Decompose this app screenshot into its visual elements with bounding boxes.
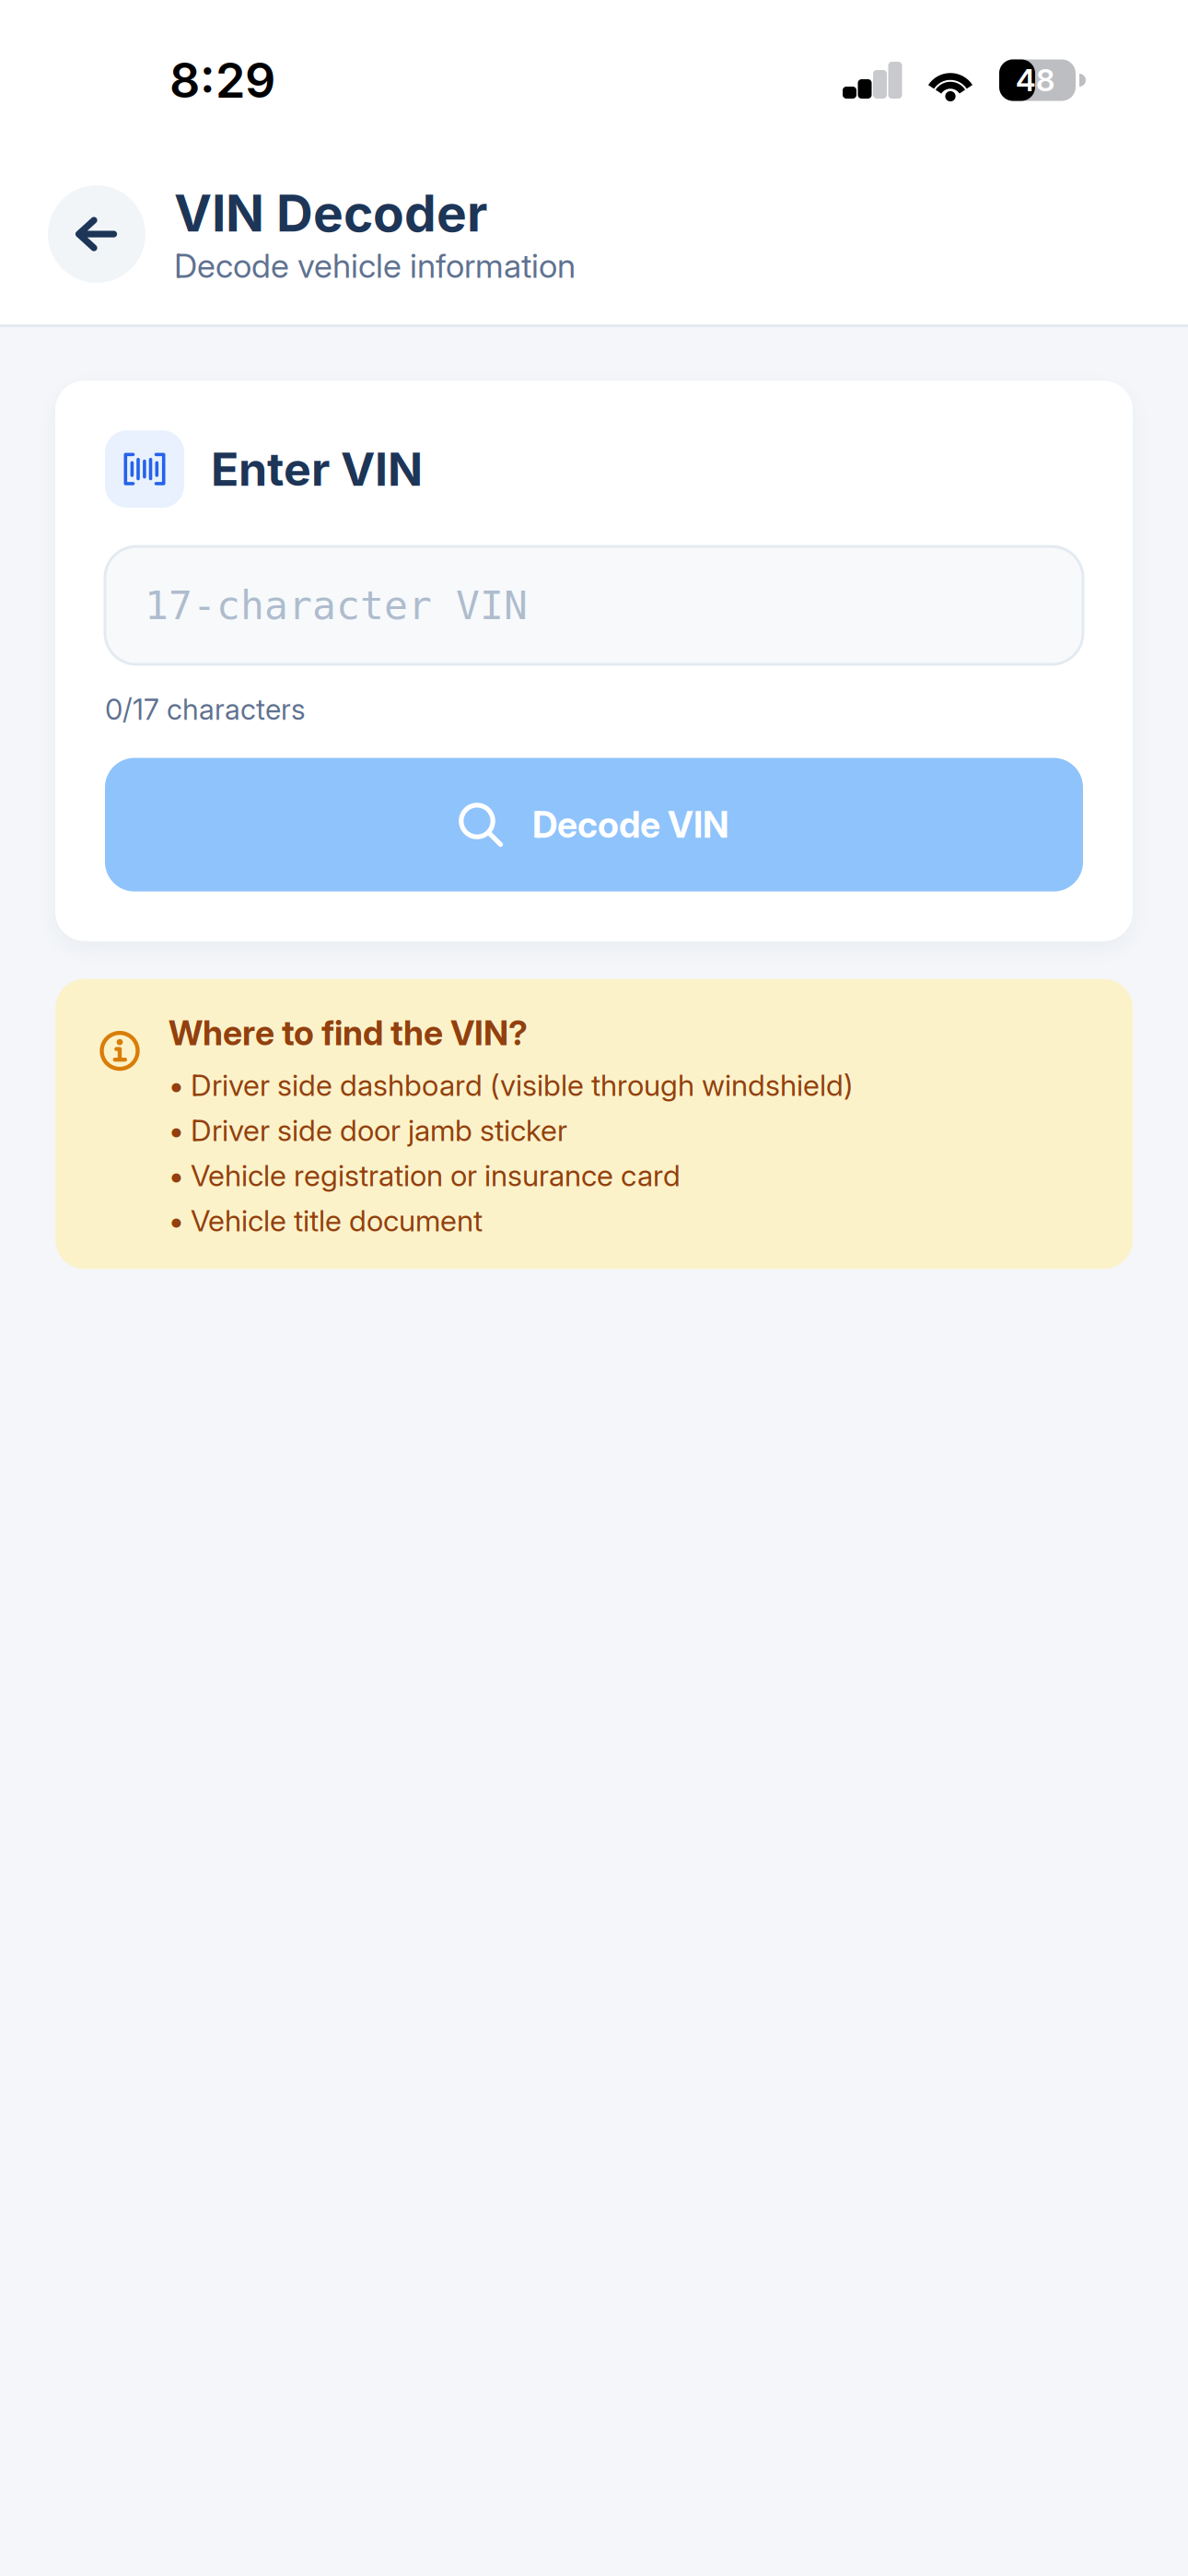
staticText: Driver side dashboard (visible through w… bbox=[191, 1067, 854, 1103]
staticText: 48 bbox=[1016, 62, 1054, 98]
staticText: • bbox=[169, 1067, 184, 1103]
staticText: Where to find the VIN? bbox=[169, 1012, 528, 1053]
button[interactable]: Back bbox=[48, 185, 146, 283]
staticText: Driver side door jamb sticker bbox=[191, 1112, 567, 1148]
button[interactable]: 17-character VIN bbox=[105, 546, 1083, 664]
button[interactable]: Decode VIN bbox=[105, 758, 1083, 891]
staticText: • bbox=[169, 1158, 184, 1193]
staticText: VIN Decoder bbox=[174, 182, 487, 244]
staticText: Vehicle registration or insurance card bbox=[191, 1158, 681, 1193]
staticText: 17-character VIN bbox=[145, 582, 528, 629]
staticText: • bbox=[169, 1112, 184, 1148]
staticText: 8:29 bbox=[169, 51, 275, 109]
staticText: 0/17 characters bbox=[105, 692, 306, 727]
staticText: Decode vehicle information bbox=[174, 246, 576, 286]
staticText: Decode VIN bbox=[532, 803, 729, 846]
staticText: Enter VIN bbox=[211, 441, 423, 497]
staticText: Vehicle title document bbox=[191, 1203, 483, 1238]
staticText: • bbox=[169, 1203, 184, 1238]
